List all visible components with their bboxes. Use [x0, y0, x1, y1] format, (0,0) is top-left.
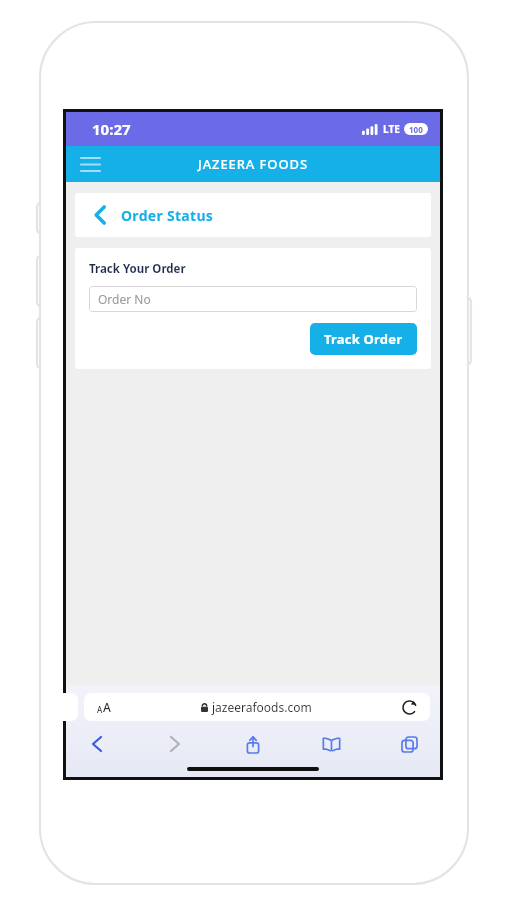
button[interactable]: Bookmarks: [316, 729, 346, 759]
staticText: Order Status: [121, 206, 214, 225]
staticText: jazeerafoods.com: [212, 699, 312, 715]
staticText: LTE: [383, 122, 400, 136]
staticText: Track Your Order: [89, 261, 186, 277]
button[interactable]: Back: [89, 204, 111, 226]
staticText: 100: [409, 124, 423, 135]
button[interactable]: Order No: [89, 286, 417, 312]
button[interactable]: Forward: [160, 729, 190, 759]
staticText: Track Order: [324, 330, 403, 348]
button[interactable]: Tabs: [394, 729, 424, 759]
other: Text size options: [94, 697, 114, 717]
button[interactable]: Share: [238, 729, 268, 759]
staticText: 10:27: [92, 119, 131, 139]
button[interactable]: Reload page: [399, 697, 419, 717]
staticText: A: [97, 704, 103, 715]
staticText: A: [103, 699, 111, 715]
button[interactable]: Text size options: [84, 693, 430, 721]
button[interactable]: Track Order: [310, 323, 417, 355]
button[interactable]: Open navigation menu: [74, 148, 106, 180]
staticText: Order No: [98, 291, 151, 307]
button[interactable]: Back: [82, 729, 112, 759]
staticText: JAZEERA FOODS: [198, 155, 308, 173]
